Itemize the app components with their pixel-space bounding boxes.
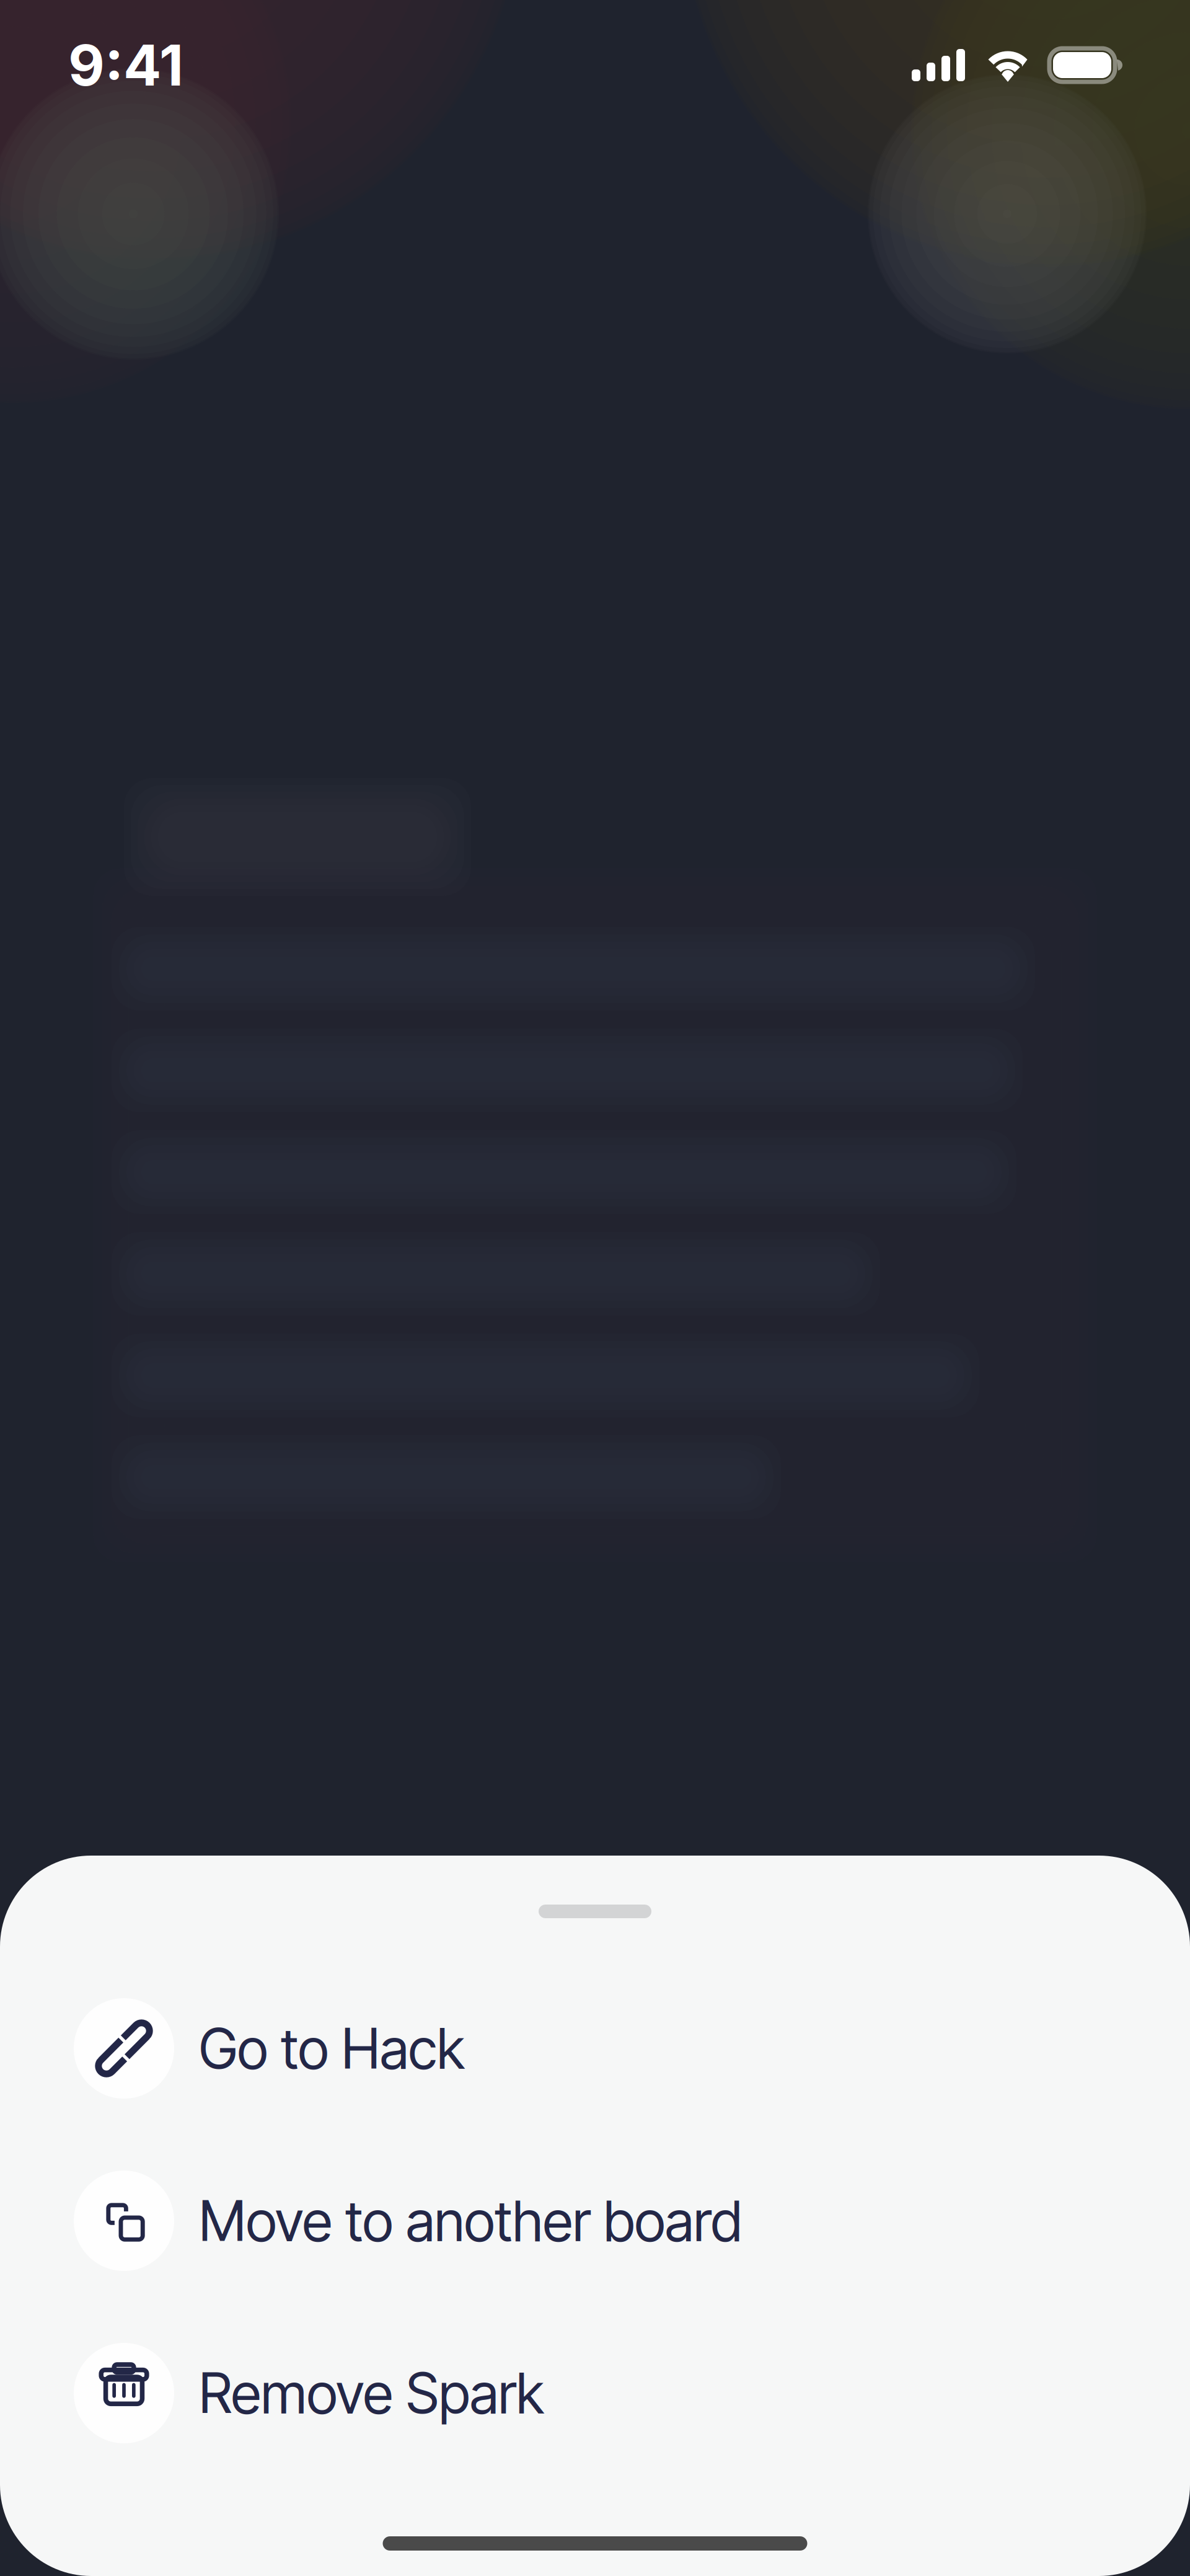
button[interactable]: Go to Hack	[0, 1962, 1190, 2135]
staticText: 9:41	[68, 31, 183, 99]
staticText: Move to another board	[199, 2187, 742, 2254]
button[interactable]: Move to another board	[0, 2135, 1190, 2307]
staticText: Go to Hack	[199, 2015, 464, 2082]
staticText: Remove Spark	[199, 2360, 544, 2427]
button[interactable]: Remove Spark	[0, 2307, 1190, 2479]
